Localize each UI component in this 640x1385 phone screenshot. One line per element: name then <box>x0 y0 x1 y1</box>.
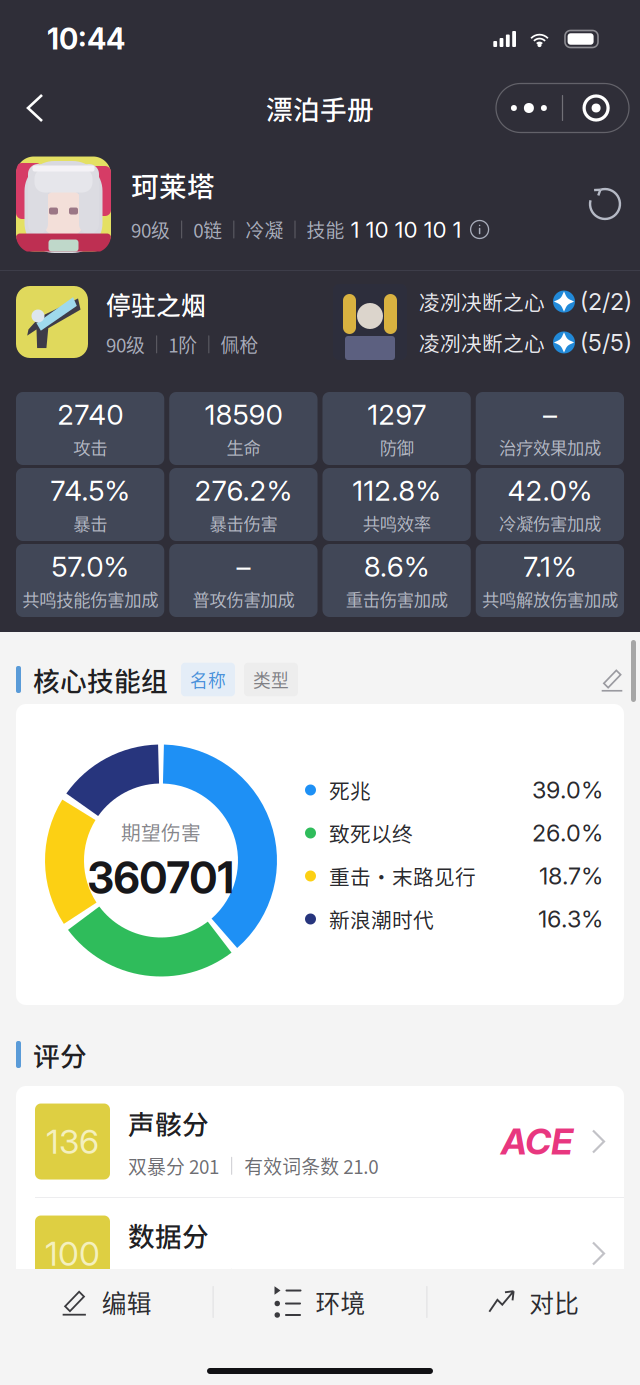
staticText: 漂泊手册 <box>266 89 374 127</box>
staticText: 重击·末路见行 <box>329 861 476 891</box>
staticText: ACE <box>501 1120 573 1163</box>
staticText: 凌冽决断之心 <box>419 287 545 316</box>
staticText: 42.0% <box>507 473 592 507</box>
staticText: 有效词条数 21.0 <box>244 1152 378 1179</box>
staticText: 100 <box>45 1233 100 1274</box>
staticText: 74.5% <box>50 473 130 507</box>
staticText: 暴击伤害 <box>209 510 277 535</box>
staticText: 数据分 <box>128 1216 209 1254</box>
staticText: 136 <box>46 1121 99 1162</box>
button[interactable]: 编辑 <box>0 1269 212 1335</box>
button[interactable]: 名称 <box>181 663 235 696</box>
staticText: 1 10 10 10 1 <box>345 216 462 243</box>
staticText: (2/2) <box>580 287 632 316</box>
staticText: 112.8% <box>352 473 441 507</box>
staticText: 有效词条数 21.0 <box>244 1264 378 1291</box>
staticText: 对比 <box>529 1284 579 1320</box>
staticText: 死兆 <box>329 775 371 805</box>
staticText: 类型 <box>253 667 289 692</box>
staticText: 期望伤害 <box>121 817 201 846</box>
staticText: 18.7% <box>539 862 603 890</box>
staticText: 停驻之烟 <box>106 286 206 322</box>
button[interactable]: 类型 <box>244 663 298 696</box>
staticText: 普攻伤害加成 <box>192 586 294 611</box>
staticText: 编辑 <box>102 1284 152 1320</box>
staticText: 10:44 <box>47 21 125 57</box>
staticText: 1阶 <box>168 331 197 358</box>
staticText: 致死以终 <box>329 818 413 848</box>
staticText: 2740 <box>57 397 123 431</box>
staticText: 1297 <box>367 397 426 431</box>
staticText: – <box>236 549 250 583</box>
staticText: 重击伤害加成 <box>346 586 448 611</box>
staticText: 新浪潮时代 <box>329 904 434 934</box>
staticText: 双暴分 201 <box>128 1264 219 1291</box>
button[interactable]: Back <box>0 78 70 138</box>
staticText: 声骸分 <box>128 1104 209 1142</box>
staticText: 评分 <box>33 1035 87 1074</box>
staticText: 共鸣解放伤害加成 <box>482 586 618 611</box>
staticText: 攻击 <box>73 434 107 459</box>
staticText: 冷凝 <box>245 216 283 243</box>
staticText: 技能 <box>307 216 345 243</box>
staticText: 凌冽决断之心 <box>419 327 545 357</box>
staticText: 26.0% <box>532 819 603 847</box>
staticText: 276.2% <box>194 473 292 507</box>
staticText: 57.0% <box>51 549 129 583</box>
staticText: 共鸣技能伤害加成 <box>22 586 158 611</box>
staticText: 冷凝伤害加成 <box>499 510 601 535</box>
staticText: 名称 <box>190 667 226 692</box>
staticText: 双暴分 201 <box>128 1152 219 1179</box>
staticText: 珂莱塔 <box>131 165 215 205</box>
button[interactable]: Edit <box>584 656 640 702</box>
button[interactable]: Close <box>563 83 629 132</box>
staticText: 治疗效果加成 <box>499 434 601 459</box>
staticText: 暴击 <box>73 510 107 535</box>
staticText: 90级 <box>106 331 145 358</box>
staticText: 7.1% <box>523 549 577 583</box>
button[interactable]: Refresh <box>576 175 634 233</box>
staticText: (5/5) <box>580 328 632 357</box>
staticText: – <box>543 397 557 431</box>
staticText: 核心技能组 <box>33 660 168 699</box>
staticText: 16.3% <box>538 905 603 933</box>
staticText: 8.6% <box>364 549 430 583</box>
staticText: 生命 <box>226 434 260 459</box>
staticText: 18590 <box>204 397 282 431</box>
staticText: 39.0% <box>532 776 603 804</box>
staticText: 0链 <box>193 216 222 243</box>
staticText: 防御 <box>380 434 414 459</box>
button[interactable]: 环境 <box>214 1269 426 1335</box>
staticText: 360701 <box>87 852 234 904</box>
button[interactable]: More <box>496 83 562 132</box>
staticText: 环境 <box>315 1284 365 1320</box>
staticText: 共鸣效率 <box>363 510 431 535</box>
button[interactable]: 136 <box>16 1086 624 1197</box>
button[interactable]: 100 <box>16 1198 624 1309</box>
button[interactable]: 对比 <box>427 1269 640 1335</box>
staticText: 佩枪 <box>220 331 258 358</box>
staticText: 90级 <box>131 216 170 243</box>
